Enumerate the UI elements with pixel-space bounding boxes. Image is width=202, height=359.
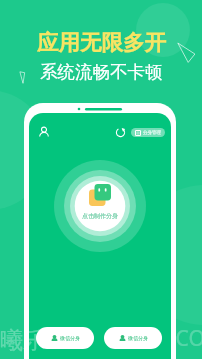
- staticText: 点击制作分身: [82, 212, 118, 220]
- staticText: .CO: [171, 324, 202, 353]
- button[interactable]: 点击制作分身: [54, 160, 146, 252]
- staticText: 曦乐: [0, 326, 46, 355]
- staticText: 应用无限多开: [37, 29, 166, 56]
- button[interactable]: 分身管理: [131, 128, 165, 137]
- button[interactable]: Refresh: [113, 125, 127, 139]
- staticText: 系统流畅不卡顿: [40, 61, 163, 83]
- button[interactable]: 微信分身: [104, 327, 162, 349]
- staticText: 微信分身: [60, 335, 80, 341]
- button[interactable]: Account: [36, 124, 52, 140]
- staticText: 分身管理: [143, 130, 161, 136]
- button[interactable]: 微信分身: [36, 327, 94, 349]
- staticText: 微信分身: [128, 335, 148, 341]
